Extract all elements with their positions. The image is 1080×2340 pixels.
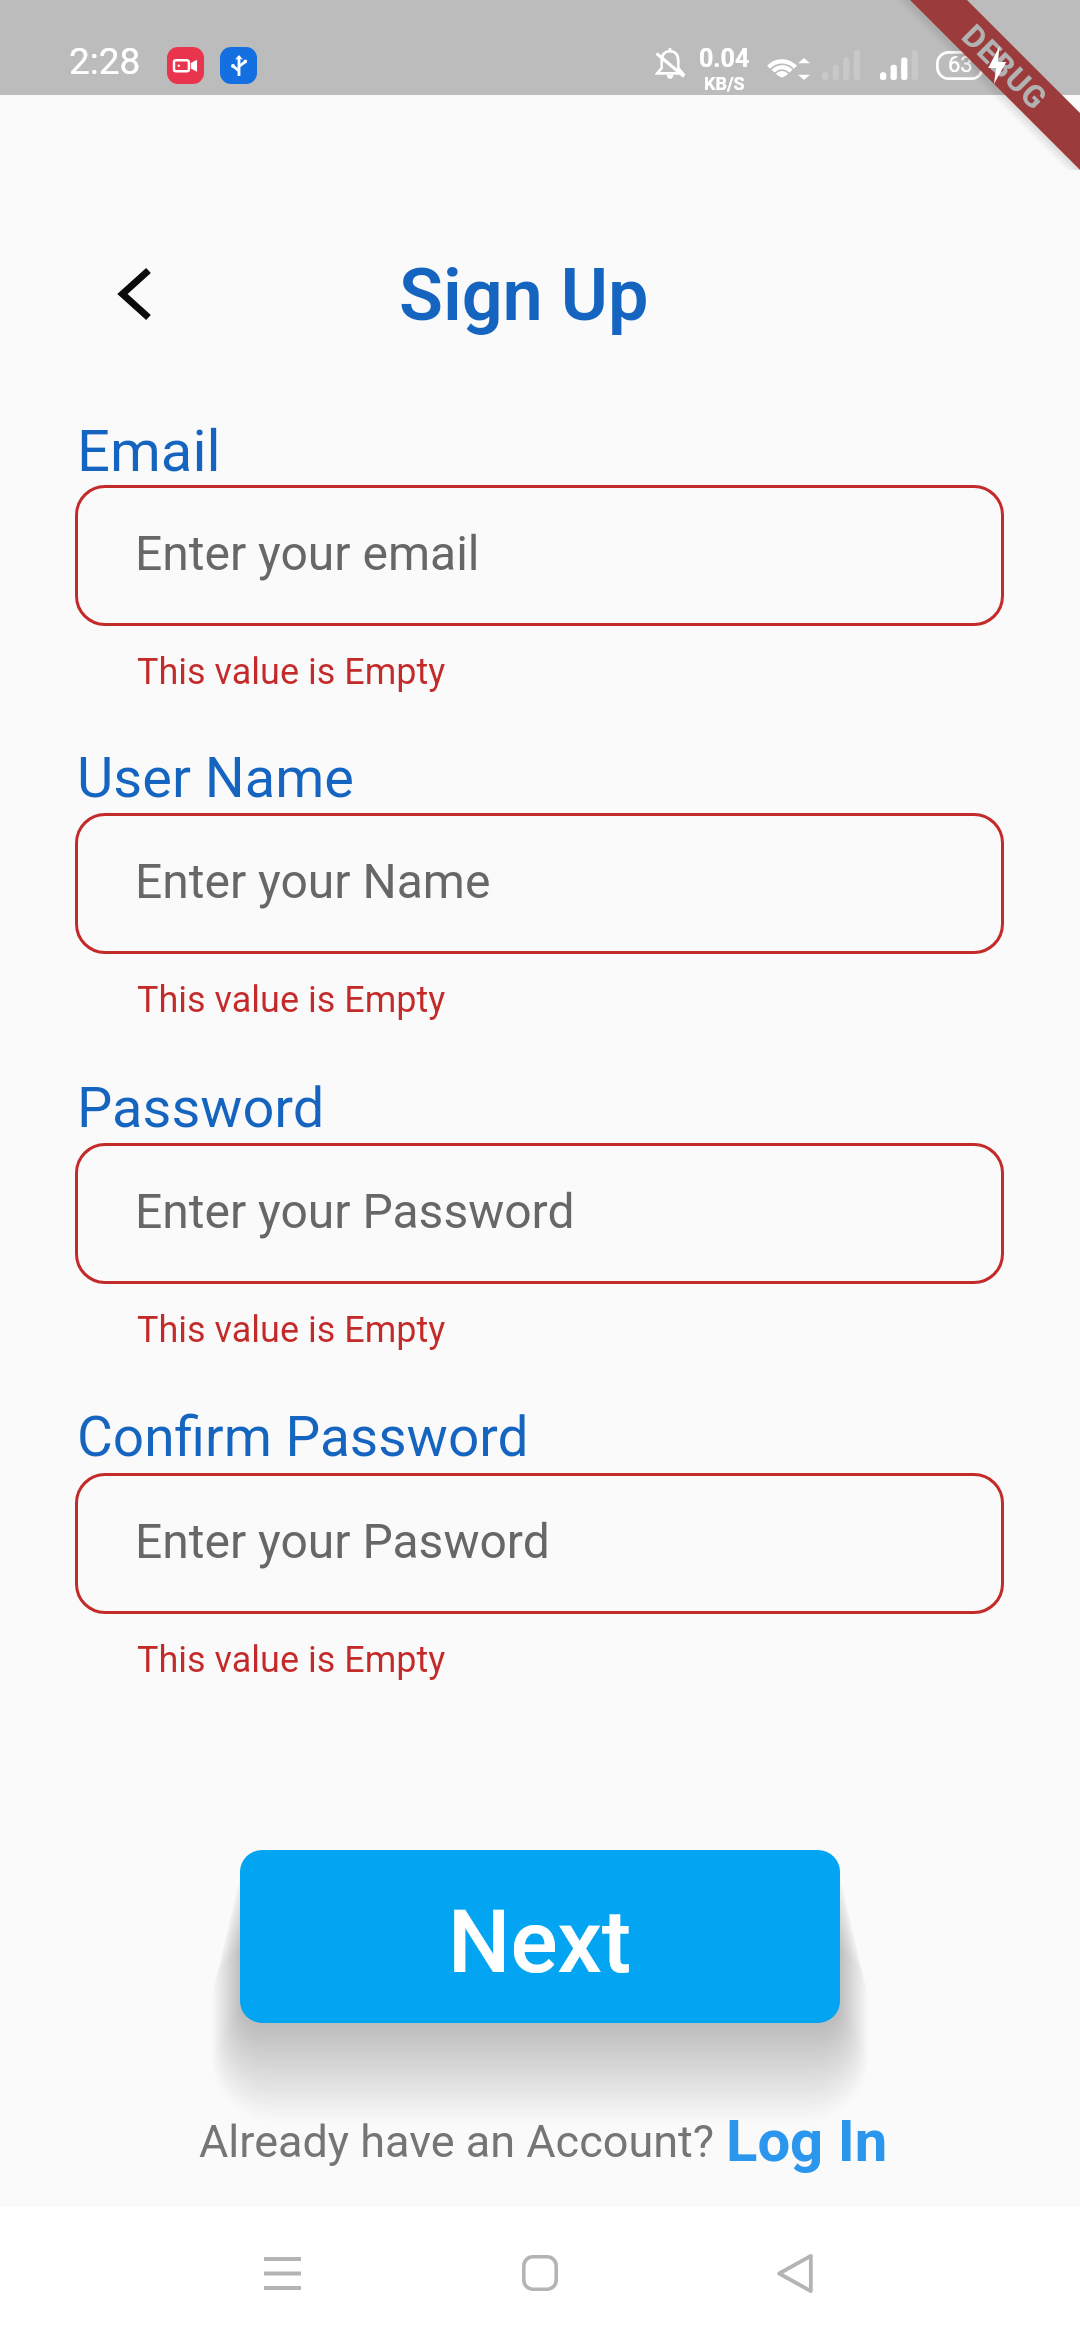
staticText: Enter your Pasword <box>135 1513 550 1569</box>
staticText: This value is Empty <box>137 979 446 1021</box>
staticText: Confirm Password <box>77 1405 529 1469</box>
staticText: Next <box>448 1890 632 1993</box>
button[interactable]: Next <box>240 1850 840 2023</box>
button[interactable]: Enter your Name <box>75 813 1004 954</box>
button[interactable]: Home <box>485 2218 595 2328</box>
staticText: KB/S <box>704 73 745 94</box>
staticText: Enter your Password <box>135 1183 575 1239</box>
staticText: This value is Empty <box>137 1309 446 1351</box>
staticText: 2:28 <box>69 40 141 83</box>
staticText: Enter your Name <box>135 853 491 909</box>
button[interactable]: Log In <box>726 2107 888 2175</box>
staticText: Sign Up <box>399 253 649 337</box>
staticText: Already have an Account? <box>199 2115 715 2168</box>
staticText: This value is Empty <box>137 1639 446 1681</box>
button[interactable]: Back <box>96 255 174 333</box>
button[interactable]: Enter your email <box>75 485 1004 626</box>
staticText: Password <box>77 1075 325 1141</box>
button[interactable]: Enter your Pasword <box>75 1473 1004 1614</box>
button[interactable]: Back <box>740 2218 850 2328</box>
staticText: This value is Empty <box>137 651 446 693</box>
staticText: Enter your email <box>135 525 480 581</box>
staticText: Email <box>77 417 221 485</box>
staticText: User Name <box>77 745 354 811</box>
button[interactable]: Enter your Password <box>75 1143 1004 1284</box>
staticText: 0.04 <box>699 44 750 73</box>
staticText: 63 <box>948 52 973 78</box>
staticText: Log In <box>726 2107 888 2175</box>
button[interactable]: Recent apps <box>227 2218 337 2328</box>
